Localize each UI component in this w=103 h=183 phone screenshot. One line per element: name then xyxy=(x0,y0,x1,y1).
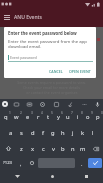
staticText: 1 xyxy=(9,111,11,115)
staticText: CANCEL xyxy=(49,69,63,74)
button[interactable]: Keyboard tool xyxy=(36,99,49,109)
staticText: k xyxy=(81,129,85,137)
staticText: 8 xyxy=(81,111,83,115)
staticText: i xyxy=(77,113,79,121)
button[interactable]: OPEN EVENT xyxy=(67,66,93,77)
button[interactable]: Google Assistant xyxy=(0,99,10,109)
button[interactable]: y xyxy=(53,109,63,125)
staticText: h xyxy=(61,129,65,137)
button[interactable]: m xyxy=(78,141,88,156)
button[interactable]: h xyxy=(58,125,68,141)
button[interactable]: j xyxy=(68,125,78,141)
button[interactable]: Keyboard tool xyxy=(49,99,63,109)
button[interactable]: g xyxy=(48,125,58,141)
button[interactable]: k xyxy=(78,125,88,141)
button[interactable]: b xyxy=(58,141,68,156)
staticText: ?123 xyxy=(3,160,13,166)
staticText: 3 xyxy=(31,111,33,115)
button[interactable]: Open navigation menu xyxy=(0,8,14,27)
staticText: d xyxy=(31,129,35,137)
staticText: g xyxy=(51,129,55,137)
staticText: r xyxy=(37,113,40,121)
staticText: b xyxy=(61,145,65,153)
staticText: OPEN EVENT xyxy=(69,69,91,74)
staticText: 9 xyxy=(91,111,93,115)
button[interactable]: i xyxy=(73,109,83,125)
button[interactable]: Voice input xyxy=(91,99,103,109)
button[interactable]: d xyxy=(27,125,38,141)
staticText: 2 xyxy=(20,111,22,115)
staticText: v xyxy=(52,145,55,153)
staticText: z xyxy=(20,145,23,153)
staticText: q xyxy=(4,113,8,121)
button[interactable]: l xyxy=(88,125,98,141)
staticText: y xyxy=(57,113,60,121)
staticText: 6 xyxy=(61,111,63,115)
button[interactable]: ?123 xyxy=(0,156,15,170)
staticText: Enter the event password below xyxy=(8,30,77,36)
staticText: j xyxy=(72,129,74,137)
button[interactable]: p xyxy=(93,109,103,125)
button[interactable]: t xyxy=(43,109,53,125)
button[interactable]: c xyxy=(38,141,48,156)
button[interactable]: u xyxy=(63,109,73,125)
staticText: , xyxy=(20,160,22,167)
staticText: s xyxy=(20,129,23,137)
button[interactable]: Emoji xyxy=(26,156,37,170)
button[interactable]: Shift xyxy=(0,141,16,156)
staticText: . xyxy=(81,160,83,167)
staticText: f xyxy=(42,129,44,137)
button[interactable]: x xyxy=(27,141,38,156)
staticText: w xyxy=(14,113,19,121)
button[interactable]: Enter xyxy=(88,158,102,168)
staticText: n xyxy=(71,145,75,153)
staticText: t xyxy=(47,113,50,121)
button[interactable]: s xyxy=(16,125,27,141)
button[interactable]: n xyxy=(68,141,78,156)
staticText: 5 xyxy=(51,111,53,115)
button[interactable]: a xyxy=(5,125,16,141)
staticText: u xyxy=(66,113,70,121)
button[interactable]: Keyboard tool xyxy=(23,99,36,109)
button[interactable]: Keyboard tool xyxy=(63,99,77,109)
staticText: e xyxy=(26,113,30,121)
button[interactable]: f xyxy=(38,125,48,141)
staticText: 4 xyxy=(41,111,43,115)
staticText: Enter the event password from the app do… xyxy=(8,38,93,49)
button[interactable]: Back xyxy=(0,170,35,183)
staticText: Event password xyxy=(10,55,37,60)
button[interactable]: , xyxy=(15,156,26,170)
staticText: 7 xyxy=(71,111,73,115)
staticText: x xyxy=(31,145,35,153)
staticText: c xyxy=(42,145,45,153)
button[interactable]: Backspace xyxy=(88,141,103,156)
button[interactable]: o xyxy=(83,109,93,125)
staticText: o xyxy=(86,113,90,121)
button[interactable]: CANCEL xyxy=(47,66,65,77)
button[interactable]: z xyxy=(16,141,27,156)
staticText: l xyxy=(92,129,94,137)
staticText: a xyxy=(9,129,13,137)
button[interactable]: r xyxy=(33,109,43,125)
button[interactable]: Home xyxy=(35,170,69,183)
button[interactable]: e xyxy=(22,109,33,125)
button[interactable]: . xyxy=(76,156,87,170)
button[interactable]: q xyxy=(0,109,11,125)
staticText: m xyxy=(80,145,86,153)
button[interactable]: Keyboard tool xyxy=(77,99,91,109)
staticText: ANU Events xyxy=(14,14,42,21)
staticText: p xyxy=(96,113,100,121)
button[interactable]: v xyxy=(48,141,58,156)
staticText: 0 xyxy=(101,111,103,115)
button[interactable]: Keyboard tool xyxy=(10,99,23,109)
button[interactable]: Recent apps xyxy=(69,170,103,183)
button[interactable]: w xyxy=(11,109,22,125)
